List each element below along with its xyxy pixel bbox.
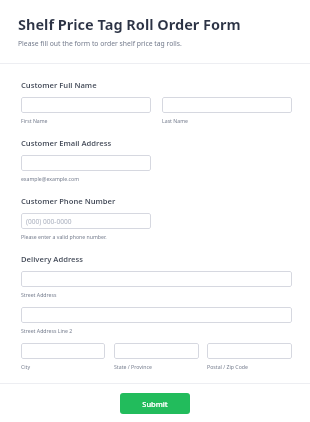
staticText: Postal / Zip Code: [207, 363, 248, 370]
staticText: (000) 000-0000: [26, 217, 72, 226]
button[interactable]: [21, 307, 292, 323]
button[interactable]: [114, 343, 199, 359]
staticText: City: [21, 363, 31, 370]
staticText: Customer Email Address: [21, 138, 112, 148]
button[interactable]: [207, 343, 292, 359]
staticText: State / Province: [114, 363, 152, 370]
staticText: Please enter a valid phone number.: [21, 233, 107, 240]
staticText: Please fill out the form to order shelf …: [18, 39, 182, 48]
staticText: Delivery Address: [21, 254, 84, 264]
staticText: example@example.com: [21, 175, 80, 182]
button[interactable]: [21, 155, 151, 171]
button[interactable]: Submit: [120, 393, 190, 414]
button[interactable]: [21, 271, 292, 287]
staticText: Last Name: [162, 117, 188, 124]
staticText: Shelf Price Tag Roll Order Form: [18, 14, 241, 34]
button[interactable]: [162, 97, 292, 113]
staticText: Customer Phone Number: [21, 196, 116, 206]
staticText: Street Address Line 2: [21, 327, 73, 334]
staticText: Submit: [142, 399, 168, 409]
button[interactable]: [21, 97, 151, 113]
staticText: First Name: [21, 117, 48, 124]
staticText: Street Address: [21, 291, 57, 298]
staticText: Customer Full Name: [21, 80, 97, 90]
button[interactable]: [21, 343, 105, 359]
button[interactable]: (000) 000-0000: [21, 213, 151, 229]
